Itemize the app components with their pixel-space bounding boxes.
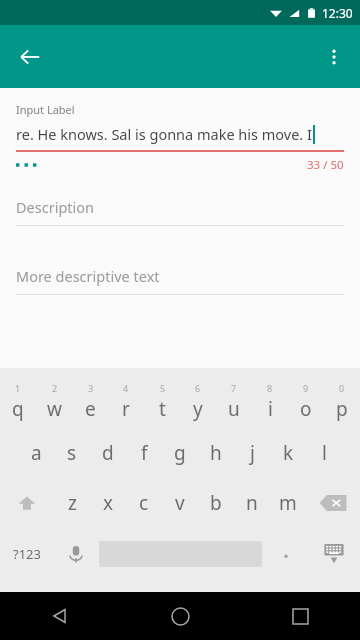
button[interactable]: m	[270, 478, 306, 528]
staticText: 33 / 50	[307, 157, 344, 173]
button[interactable]: 1	[0, 376, 36, 428]
staticText: 4	[123, 382, 129, 394]
button[interactable]: s	[54, 428, 90, 478]
button[interactable]: 8	[252, 376, 288, 428]
staticText: l	[322, 440, 327, 466]
button[interactable]: Back	[10, 37, 50, 77]
button[interactable]: v	[162, 478, 198, 528]
staticText: u	[228, 396, 240, 422]
staticText: f	[141, 440, 148, 466]
button[interactable]: x	[90, 478, 126, 528]
staticText: n	[246, 490, 258, 516]
staticText: More descriptive text	[16, 266, 160, 286]
button[interactable]: n	[234, 478, 270, 528]
button[interactable]: Hide keyboard	[307, 528, 360, 580]
staticText: re. He knows. Sal is gonna make his move…	[16, 124, 312, 144]
staticText: w	[47, 396, 62, 422]
staticText: p	[336, 396, 348, 422]
staticText: h	[210, 440, 222, 466]
button[interactable]: Voice input	[54, 528, 97, 580]
staticText: s	[67, 440, 77, 466]
staticText: 12:30	[322, 5, 353, 21]
button[interactable]: j	[234, 428, 270, 478]
button[interactable]: f	[126, 428, 162, 478]
button[interactable]: Recents	[240, 592, 360, 640]
staticText: q	[12, 396, 24, 422]
button[interactable]: l	[306, 428, 342, 478]
staticText: 9	[303, 382, 309, 394]
button[interactable]: 4	[108, 376, 144, 428]
staticText: 2	[52, 382, 58, 394]
staticText: x	[103, 490, 114, 516]
button[interactable]: 6	[180, 376, 216, 428]
staticText: b	[210, 490, 222, 516]
button[interactable]: d	[90, 428, 126, 478]
staticText: m	[279, 490, 297, 516]
staticText: k	[283, 440, 294, 466]
button[interactable]: More options	[314, 37, 354, 77]
staticText: c	[139, 490, 149, 516]
button[interactable]: a	[18, 428, 54, 478]
staticText: z	[68, 490, 77, 516]
button[interactable]: ?123	[0, 528, 54, 580]
staticText: Description	[16, 197, 95, 217]
staticText: v	[175, 490, 185, 516]
staticText: 1	[15, 382, 21, 394]
staticText: 6	[195, 382, 201, 394]
button[interactable]: h	[198, 428, 234, 478]
staticText: 0	[339, 382, 345, 394]
button[interactable]: 3	[72, 376, 108, 428]
staticText: ?123	[13, 545, 41, 563]
button[interactable]: g	[162, 428, 198, 478]
staticText: r	[122, 396, 130, 422]
staticText: o	[300, 396, 312, 422]
staticText: d	[102, 440, 114, 466]
button[interactable]: 0	[324, 376, 360, 428]
button[interactable]: 5	[144, 376, 180, 428]
staticText: y	[193, 396, 203, 422]
button[interactable]: Home	[120, 592, 240, 640]
button[interactable]: re. He knows. Sal is gonna make his move…	[16, 123, 344, 145]
staticText: 7	[231, 382, 237, 394]
button[interactable]: k	[270, 428, 306, 478]
button[interactable]	[264, 528, 307, 580]
button[interactable]: Description	[16, 195, 344, 226]
button[interactable]: Shift	[0, 478, 54, 528]
staticText: j	[250, 440, 255, 466]
staticText: a	[31, 440, 42, 466]
staticText: 8	[267, 382, 273, 394]
button[interactable]: z	[54, 478, 90, 528]
button[interactable]: 9	[288, 376, 324, 428]
button[interactable]: b	[198, 478, 234, 528]
button[interactable]: Back	[0, 592, 120, 640]
staticText: i	[268, 396, 273, 422]
staticText: Input Label	[16, 102, 75, 117]
button[interactable]: Backspace	[306, 478, 360, 528]
button[interactable]: c	[126, 478, 162, 528]
staticText: e	[85, 396, 96, 422]
staticText: 5	[160, 382, 166, 394]
button[interactable]: More descriptive text	[16, 264, 344, 295]
staticText: t	[159, 396, 166, 422]
staticText: g	[174, 440, 186, 466]
button[interactable]: 2	[36, 376, 72, 428]
staticText: 3	[88, 382, 94, 394]
button[interactable]: 7	[216, 376, 252, 428]
